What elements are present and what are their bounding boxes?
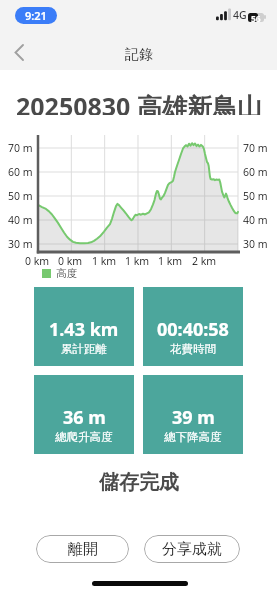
staticText: 60 m — [8, 165, 33, 179]
staticText: 9:21 — [25, 8, 47, 23]
button[interactable]: 39 m — [143, 375, 243, 454]
staticText: 0 km — [25, 254, 50, 268]
staticText: 總爬升高度 — [55, 430, 113, 444]
staticText: 30 m — [243, 237, 268, 251]
staticText: 40 m — [8, 213, 33, 227]
button[interactable]: 1.43 km — [34, 287, 134, 366]
staticText: 儲存完成 — [99, 470, 179, 494]
button[interactable]: 36 m — [34, 375, 134, 454]
staticText: 36 m — [63, 405, 106, 430]
staticText: 30 m — [8, 237, 33, 251]
staticText: 2 km — [192, 254, 217, 268]
button[interactable]: 分享成就 — [144, 535, 240, 563]
staticText: 1.43 km — [49, 317, 119, 342]
button[interactable]: 離開 — [36, 535, 129, 563]
staticText: 總下降高度 — [164, 430, 222, 444]
staticText: 0 km — [58, 254, 83, 268]
button[interactable] — [14, 44, 24, 61]
staticText: 高度 — [56, 267, 77, 280]
staticText: 50 m — [243, 189, 268, 203]
staticText: 40 m — [243, 213, 268, 227]
staticText: 70 m — [8, 141, 33, 155]
staticText: 記錄 — [125, 46, 153, 64]
staticText: 39 m — [172, 405, 215, 430]
button[interactable]: 9:21 — [15, 7, 57, 24]
staticText: 1 km — [92, 254, 117, 268]
staticText: 70 m — [243, 141, 268, 155]
staticText: 分享成就 — [162, 540, 222, 559]
staticText: 50 m — [8, 189, 33, 203]
button[interactable]: 00:40:58 — [143, 287, 243, 366]
staticText: 花費時間 — [170, 342, 216, 356]
staticText: 1 km — [158, 254, 183, 268]
staticText: 1 km — [125, 254, 150, 268]
staticText: 4G — [233, 8, 247, 22]
staticText: 56 — [251, 13, 261, 22]
staticText: 離開 — [68, 540, 98, 559]
staticText: 累計距離 — [61, 342, 107, 356]
staticText: 20250830 高雄新鳥山 — [16, 89, 262, 115]
staticText: 00:40:58 — [157, 317, 229, 342]
staticText: 60 m — [243, 165, 268, 179]
